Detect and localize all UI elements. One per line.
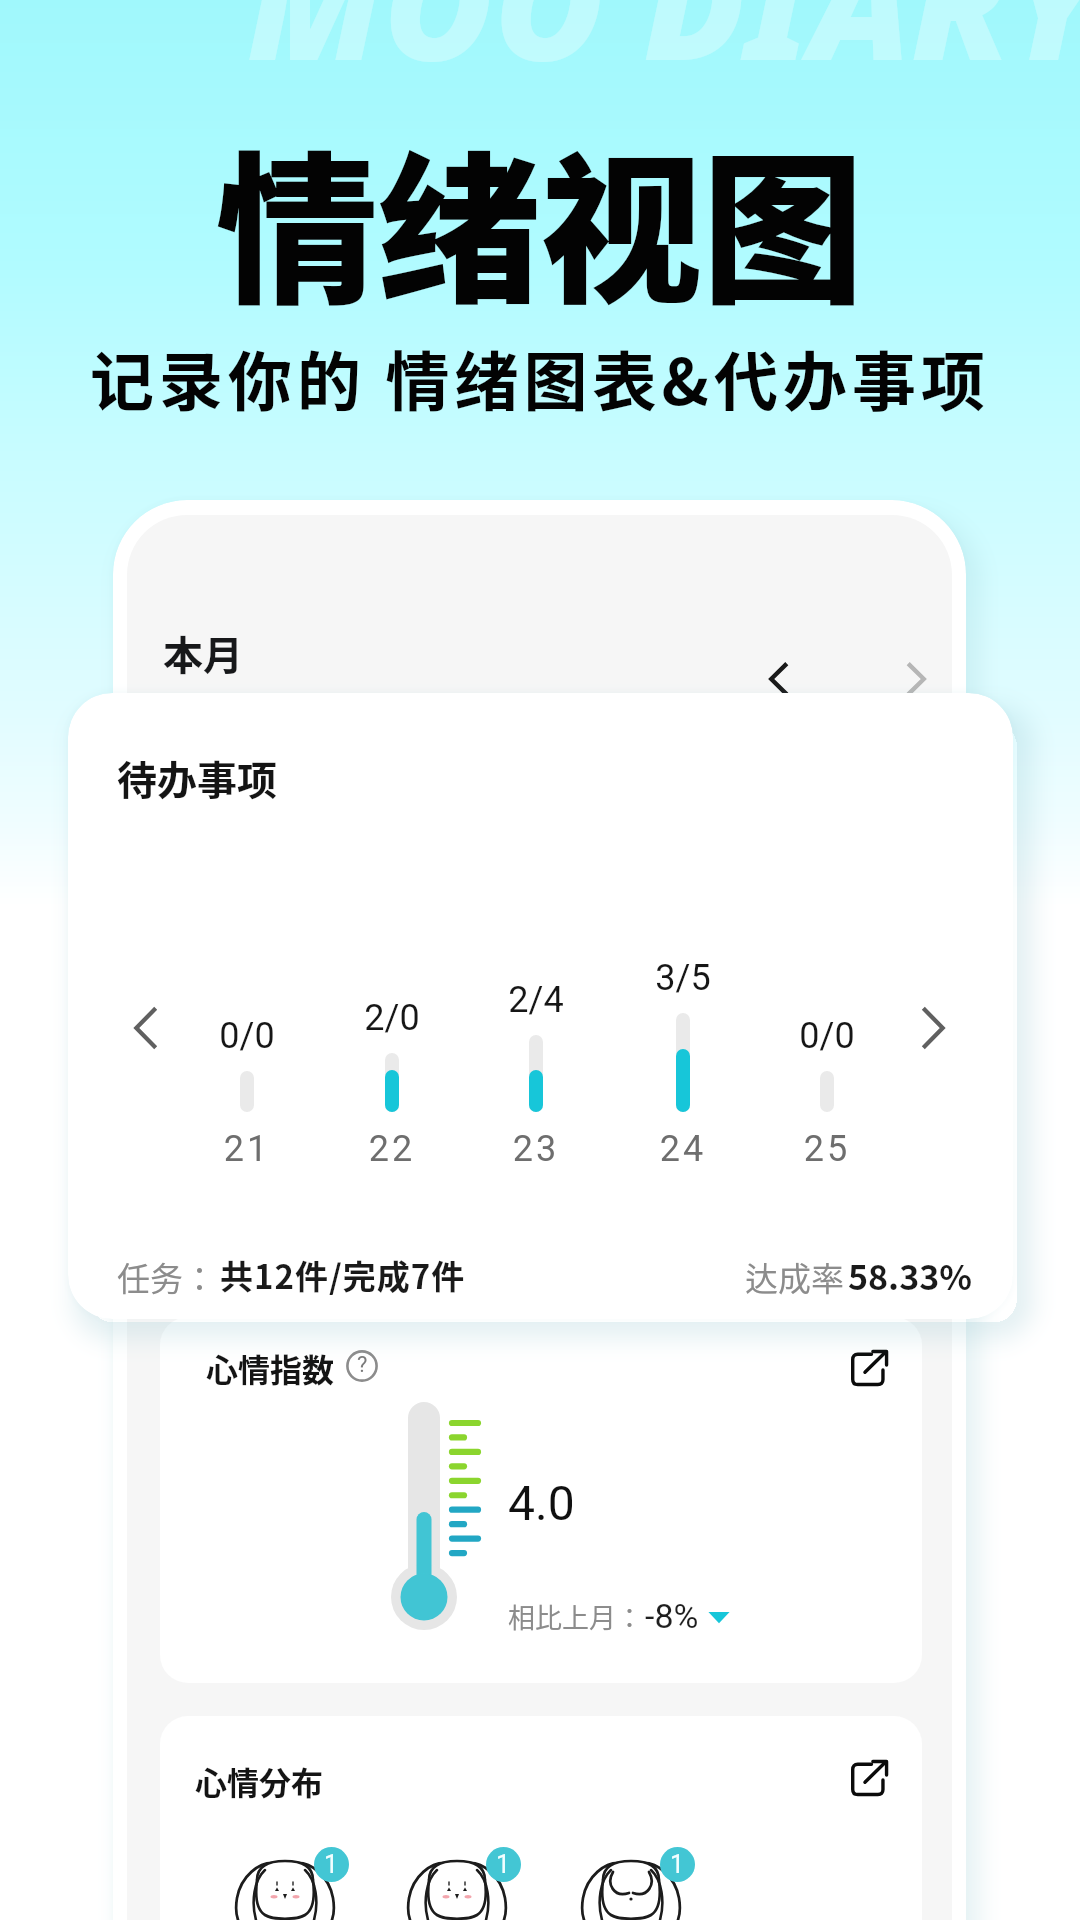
staticText: 3/5 xyxy=(613,957,753,999)
staticText: 24 xyxy=(613,1128,753,1170)
button[interactable]: Previous days xyxy=(110,992,182,1064)
staticText: 情绪视图 xyxy=(0,102,1080,337)
staticText: 2/0 xyxy=(322,997,462,1039)
staticText: 0/0 xyxy=(177,1015,317,1057)
staticText: 心情分布 xyxy=(195,1758,324,1804)
staticText: 达成率 xyxy=(745,1253,844,1301)
staticText: 心情指数 xyxy=(206,1345,335,1391)
staticText: 2/4 xyxy=(466,979,606,1021)
staticText: 58.33% xyxy=(848,1251,973,1300)
button[interactable]: Open mood distribution detail xyxy=(842,1750,898,1806)
button[interactable]: Next month xyxy=(880,643,952,715)
staticText: 0/0 xyxy=(757,1015,897,1057)
button[interactable]: Previous month xyxy=(743,643,815,715)
staticText: 共12件/完成7件 xyxy=(220,1251,466,1299)
staticText: 本月 xyxy=(163,624,243,682)
staticText: 1 xyxy=(670,1850,685,1879)
staticText: 1 xyxy=(324,1850,339,1879)
staticText: 22 xyxy=(322,1128,462,1170)
staticText: 任务： xyxy=(117,1253,216,1301)
staticText: MOO DIARY xyxy=(247,0,1080,104)
button[interactable]: 心情指数 xyxy=(160,1317,922,1683)
staticText: 4.0 xyxy=(508,1475,575,1531)
staticText: -8% xyxy=(645,1596,699,1636)
staticText: 21 xyxy=(177,1128,317,1170)
staticText: ? xyxy=(357,1352,368,1378)
staticText: 25 xyxy=(757,1128,897,1170)
button[interactable]: 心情分布 xyxy=(160,1716,922,1920)
button[interactable]: Next days xyxy=(897,992,969,1064)
staticText: 1 xyxy=(496,1850,511,1879)
staticText: 待办事项 xyxy=(117,749,277,807)
button[interactable]: Open mood index detail xyxy=(842,1340,898,1396)
staticText: 记录你的 情绪图表&代办事项 xyxy=(0,331,1080,424)
staticText: 相比上月： xyxy=(508,1597,643,1636)
staticText: 23 xyxy=(466,1128,606,1170)
